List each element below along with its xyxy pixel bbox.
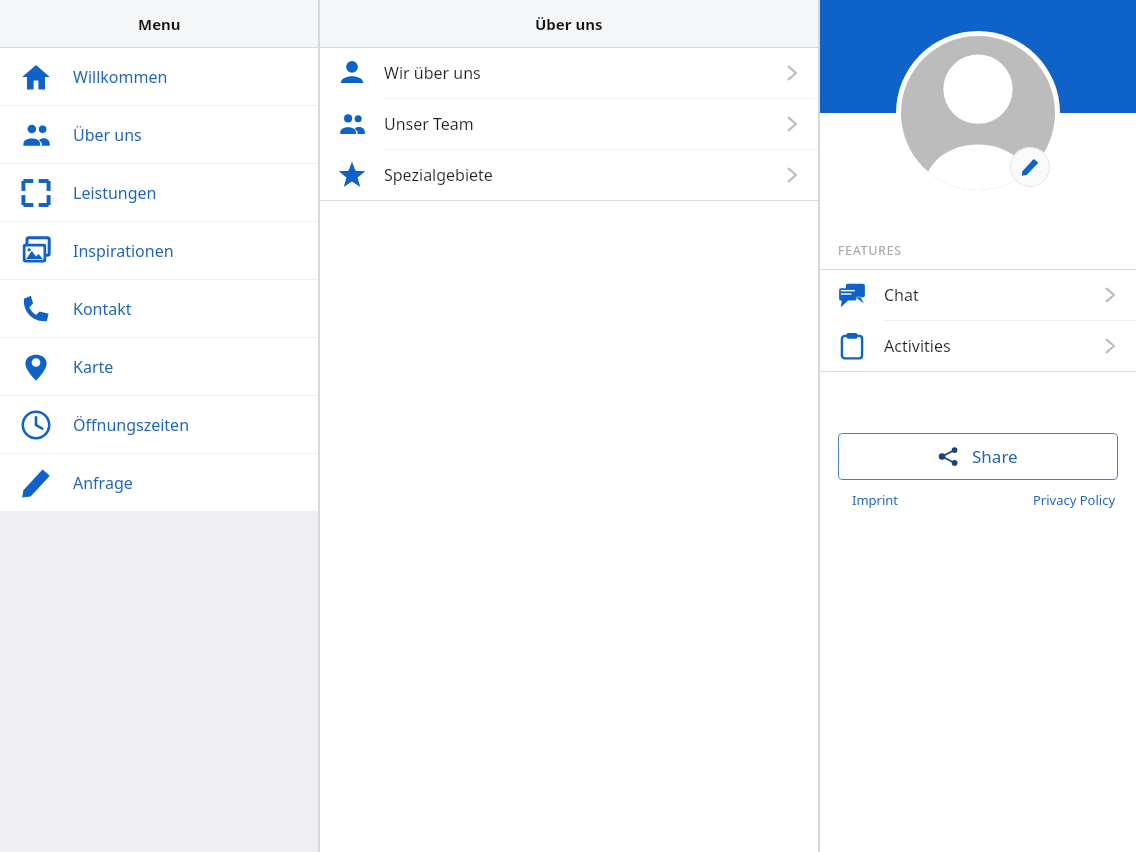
button[interactable]: Imprint: [838, 489, 913, 511]
staticText: Imprint: [852, 491, 899, 509]
button[interactable]: Über uns: [0, 106, 318, 164]
staticText: FEATURES: [838, 242, 902, 258]
staticText: Über uns: [535, 14, 603, 34]
button[interactable]: Kontakt: [0, 280, 318, 338]
staticText: Willkommen: [73, 66, 168, 88]
staticText: Share: [972, 445, 1018, 468]
staticText: Activities: [884, 335, 1100, 357]
staticText: Öffnungszeiten: [73, 414, 190, 436]
button[interactable]: Karte: [0, 338, 318, 396]
button[interactable]: Willkommen: [0, 48, 318, 106]
button[interactable]: Activities: [820, 321, 1136, 371]
staticText: Karte: [73, 356, 114, 378]
button[interactable]: Privacy Policy: [1031, 489, 1118, 511]
button[interactable]: Unser Team: [320, 99, 818, 150]
button[interactable]: Anfrage: [0, 454, 318, 512]
button[interactable]: Wir über uns: [320, 48, 818, 99]
staticText: Unser Team: [384, 113, 782, 135]
staticText: Menu: [138, 14, 181, 34]
button[interactable]: Leistungen: [0, 164, 318, 222]
staticText: Inspirationen: [73, 240, 174, 262]
staticText: Privacy Policy: [1033, 491, 1116, 509]
staticText: Kontakt: [73, 298, 132, 320]
staticText: Spezialgebiete: [384, 164, 782, 186]
button[interactable]: Spezialgebiete: [320, 150, 818, 200]
staticText: Über uns: [73, 124, 142, 146]
button[interactable]: Öffnungszeiten: [0, 396, 318, 454]
staticText: Wir über uns: [384, 62, 782, 84]
button[interactable]: Inspirationen: [0, 222, 318, 280]
button[interactable]: Chat: [820, 270, 1136, 321]
button[interactable]: Share: [838, 433, 1118, 480]
staticText: Chat: [884, 284, 1100, 306]
staticText: Leistungen: [73, 182, 157, 204]
staticText: Anfrage: [73, 472, 133, 494]
button[interactable]: Edit profile picture: [1010, 147, 1050, 187]
